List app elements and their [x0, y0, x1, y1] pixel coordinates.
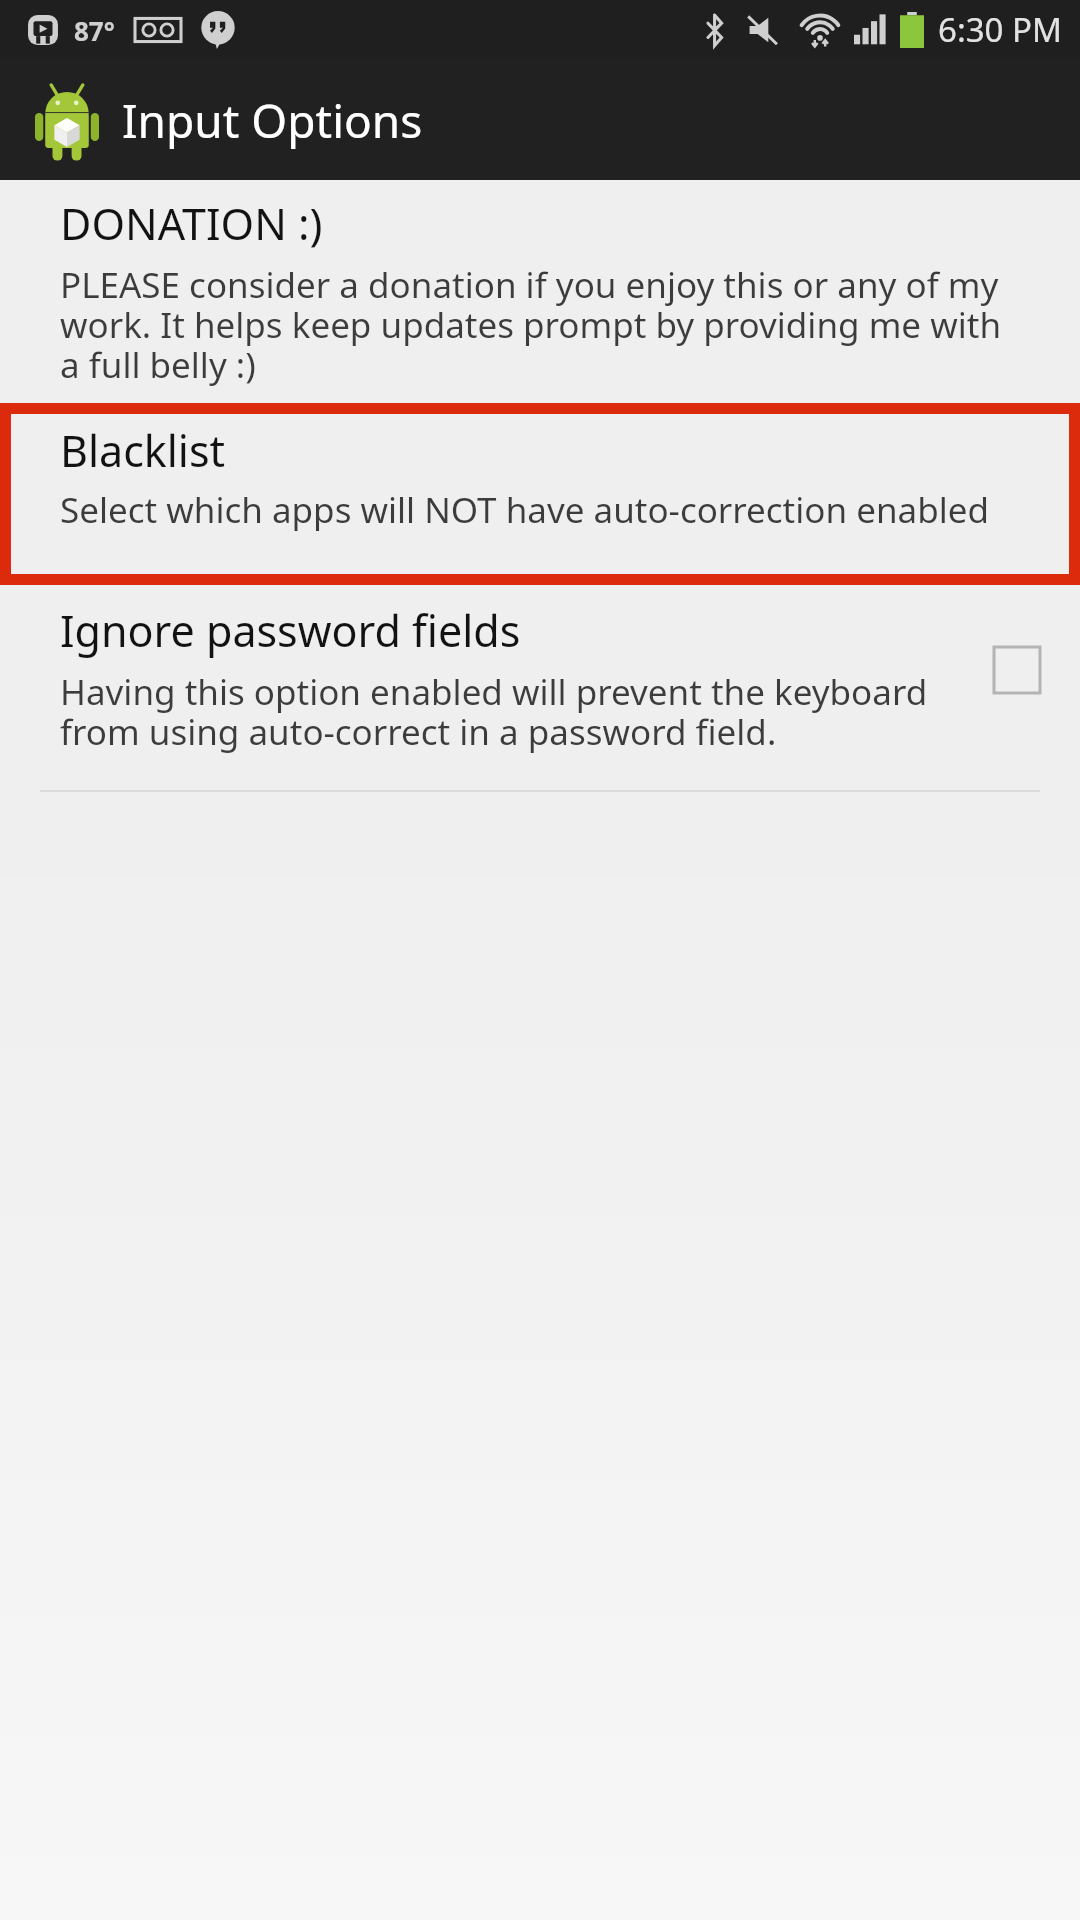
button[interactable]: Ignore password fields checkbox: [994, 647, 1040, 693]
button[interactable]: DONATION :): [0, 180, 1080, 403]
staticText: Having this option enabled will prevent …: [60, 668, 976, 756]
button[interactable]: Ignore password fields: [0, 585, 1080, 766]
staticText: Ignore password fields: [60, 601, 521, 660]
staticText: 87°: [74, 13, 115, 48]
staticText: DONATION :): [60, 194, 323, 253]
staticText: Select which apps will NOT have auto-cor…: [60, 486, 990, 534]
staticText: Blacklist: [60, 421, 226, 480]
staticText: 6:30 PM: [938, 7, 1062, 52]
button[interactable]: Blacklist: [0, 403, 1080, 585]
staticText: Input Options: [122, 89, 423, 152]
staticText: PLEASE consider a donation if you enjoy …: [60, 261, 1020, 389]
